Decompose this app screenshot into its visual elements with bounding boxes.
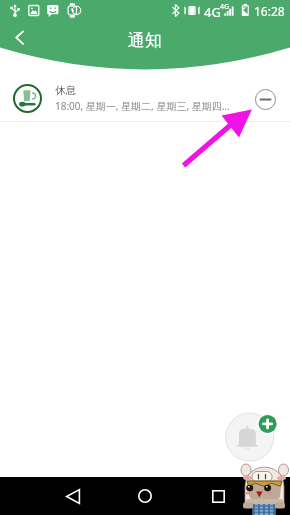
button[interactable]: 休息: [0, 78, 290, 119]
button[interactable]: Back: [2, 20, 38, 56]
staticText: 18:00, 星期一, 星期二, 星期三, 星期四…: [55, 99, 230, 113]
staticText: 4G: [204, 3, 221, 21]
button[interactable]: Back: [55, 478, 91, 514]
staticText: 16:28: [254, 3, 285, 19]
button[interactable]: Recents: [200, 478, 236, 514]
staticText: 4G: [220, 2, 230, 12]
staticText: 休息: [55, 84, 76, 97]
staticText: 通知: [128, 30, 162, 51]
button[interactable]: Home: [127, 478, 163, 514]
button[interactable]: Remove: [249, 83, 281, 115]
button[interactable]: Add notification: [224, 411, 279, 466]
